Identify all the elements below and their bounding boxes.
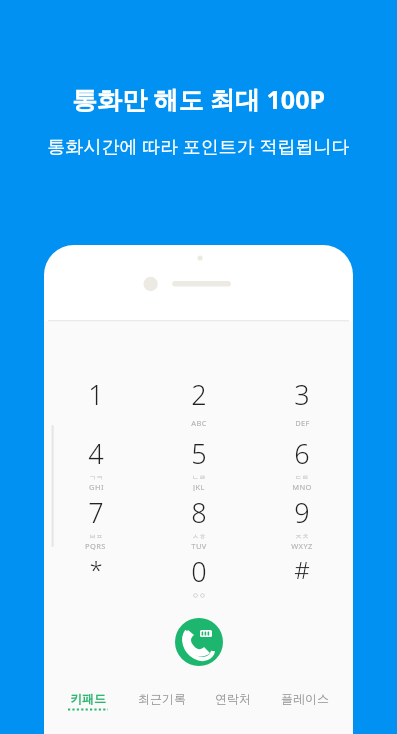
staticText: WXYZ xyxy=(291,541,313,550)
staticText: 2 xyxy=(191,376,207,413)
button[interactable]: 2 xyxy=(147,376,250,432)
staticText: ㄱㅋ xyxy=(89,473,103,482)
staticText: ㄴㄹ xyxy=(192,473,206,482)
staticText: 6 xyxy=(294,435,310,472)
staticText: DEF xyxy=(295,418,310,428)
button[interactable]: 키패드 xyxy=(62,689,114,713)
button[interactable]: 6 xyxy=(250,435,353,491)
staticText: 키패드 xyxy=(70,691,106,706)
staticText: ㅂㅍ xyxy=(89,532,103,541)
button[interactable]: 3 xyxy=(250,376,353,432)
staticText: TUV xyxy=(191,541,207,550)
button[interactable]: 0 xyxy=(147,553,250,609)
button[interactable]: 1 xyxy=(44,376,147,432)
staticText: GHI xyxy=(89,482,104,491)
staticText: MNO xyxy=(292,482,312,491)
staticText: 통화시간에 따라 포인트가 적립됩니다 xyxy=(47,134,350,159)
button[interactable]: * xyxy=(44,553,147,609)
staticText: 5 xyxy=(191,435,207,472)
button[interactable]: 최근기록 xyxy=(132,689,192,708)
staticText: * xyxy=(89,553,103,586)
button[interactable]: 9 xyxy=(250,494,353,550)
staticText: ㅅㅎ xyxy=(192,532,206,541)
staticText: PQRS xyxy=(85,541,106,550)
staticText: 연락처 xyxy=(215,691,251,706)
staticText: 8 xyxy=(191,494,207,531)
staticText: 플레이스 xyxy=(281,691,329,706)
button[interactable]: 8 xyxy=(147,494,250,550)
staticText: JKL xyxy=(193,482,205,491)
button[interactable]: # xyxy=(250,553,353,609)
staticText: 9 xyxy=(294,494,310,531)
staticText: ㄷㅌ xyxy=(295,473,309,482)
button[interactable]: Call xyxy=(175,618,223,666)
staticText: 최근기록 xyxy=(138,691,186,706)
staticText: 1 xyxy=(88,376,104,413)
staticText: 0 xyxy=(191,553,207,590)
staticText: ABC xyxy=(191,418,207,428)
button[interactable]: 플레이스 xyxy=(275,689,335,708)
staticText: 4 xyxy=(88,435,104,472)
staticText: ㅈㅊ xyxy=(295,532,309,541)
button[interactable]: 4 xyxy=(44,435,147,491)
staticText: ㅇㅇ xyxy=(192,591,206,600)
staticText: 7 xyxy=(88,494,104,531)
button[interactable]: 7 xyxy=(44,494,147,550)
staticText: 3 xyxy=(294,376,310,413)
staticText: 통화만 해도 최대 100P xyxy=(72,82,325,116)
button[interactable]: 5 xyxy=(147,435,250,491)
button[interactable]: 연락처 xyxy=(209,689,257,708)
staticText: # xyxy=(294,553,310,586)
